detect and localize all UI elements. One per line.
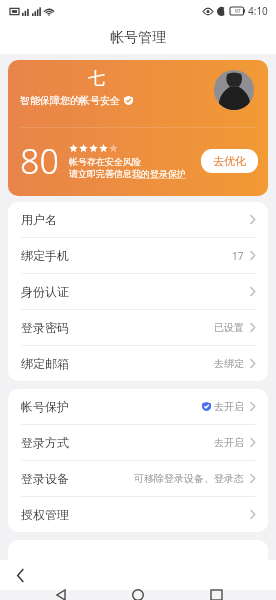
staticText: 97 (235, 8, 241, 15)
staticText: 17 (232, 249, 244, 263)
staticText: 智能保障您的帐号安全 (20, 94, 120, 107)
staticText: 请立即完善信息我的登录保护 (69, 168, 186, 179)
staticText: 身份认证 (21, 284, 69, 299)
button[interactable]: 登录方式 (8, 425, 268, 460)
button[interactable]: 七 (8, 60, 268, 196)
button[interactable]: Back (44, 590, 78, 600)
staticText: 登录设备 (21, 471, 69, 486)
staticText: 登录方式 (21, 435, 69, 450)
staticText: 去开启 (214, 400, 244, 413)
staticText: 帐号管理 (110, 29, 166, 47)
button[interactable]: 登录密码 (8, 310, 268, 345)
staticText: 绑定手机 (21, 248, 69, 263)
button[interactable]: Recents (199, 590, 233, 600)
button[interactable]: Home (121, 590, 155, 600)
staticText: 授权管理 (21, 507, 69, 522)
staticText: 4:10 (248, 4, 268, 18)
button[interactable]: Avatar (214, 70, 254, 110)
button[interactable]: 授权管理 (8, 497, 268, 532)
staticText: 七 (88, 68, 105, 89)
button[interactable]: Back (10, 565, 30, 585)
button[interactable]: 帐号保护 (8, 389, 268, 424)
staticText: 去优化 (213, 154, 246, 168)
staticText: 去开启 (214, 436, 244, 449)
button[interactable]: 去优化 (201, 149, 258, 173)
staticText: 已设置 (214, 321, 244, 334)
button[interactable]: 用户名 (8, 202, 268, 237)
button[interactable]: 登录设备 (8, 461, 268, 496)
button[interactable]: 绑定手机 (8, 238, 268, 273)
staticText: 绑定邮箱 (21, 356, 69, 371)
staticText: 帐号保护 (21, 399, 69, 414)
staticText: 可移除登录设备、登录态 (134, 472, 244, 485)
staticText: 去绑定 (214, 357, 244, 370)
staticText: 登录密码 (21, 320, 69, 335)
staticText: 80 (20, 138, 59, 184)
staticText: 用户名 (21, 212, 57, 227)
button[interactable]: 绑定邮箱 (8, 346, 268, 381)
staticText: 帐号存在安全风险 (69, 156, 141, 167)
button[interactable]: 身份认证 (8, 274, 268, 309)
